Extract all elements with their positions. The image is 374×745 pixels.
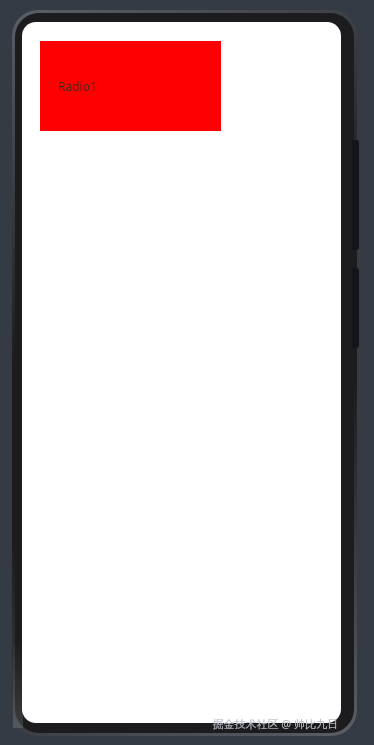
button[interactable]: Radio1	[40, 41, 221, 131]
staticText: Radio1	[58, 78, 97, 94]
staticText: 掘金技术社区 @ 帅比九日	[212, 716, 338, 731]
